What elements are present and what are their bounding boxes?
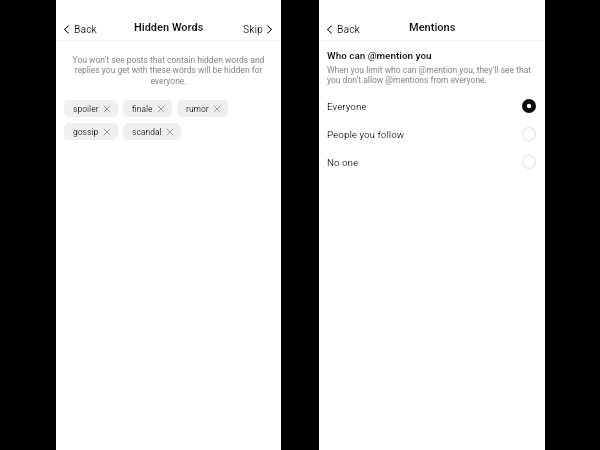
staticText: You won’t see posts that contain hidden … <box>72 55 265 86</box>
other: Remove spoiler <box>104 106 110 112</box>
button[interactable]: No one <box>327 148 536 176</box>
button[interactable]: Everyone <box>327 92 536 120</box>
staticText: Back <box>337 23 360 35</box>
other: Remove rumor <box>214 106 220 112</box>
staticText: When you limit who can @mention you, the… <box>327 65 536 85</box>
button[interactable]: gossip <box>64 123 118 140</box>
button[interactable]: rumor <box>177 100 228 117</box>
staticText: Everyone <box>327 101 367 112</box>
button[interactable]: Back <box>63 18 99 40</box>
staticText: Who can @mention you <box>327 50 432 62</box>
staticText: Back <box>74 23 97 35</box>
staticText: rumor <box>186 104 209 114</box>
staticText: Mentions <box>409 21 456 34</box>
staticText: Hidden Words <box>134 21 204 34</box>
staticText: spoiler <box>73 104 99 114</box>
staticText: People you follow <box>327 129 405 140</box>
button[interactable]: Back <box>326 18 362 40</box>
other: Remove finale <box>158 106 164 112</box>
button[interactable]: finale <box>123 100 172 117</box>
staticText: Skip <box>243 23 263 35</box>
staticText: No one <box>327 157 359 168</box>
other: Remove scandal <box>167 129 173 135</box>
staticText: finale <box>132 104 153 114</box>
button[interactable]: scandal <box>123 123 181 140</box>
button[interactable]: spoiler <box>64 100 118 117</box>
button[interactable]: Skip <box>241 18 274 40</box>
button[interactable]: People you follow <box>327 120 536 148</box>
staticText: gossip <box>73 127 99 137</box>
other: Remove gossip <box>104 129 110 135</box>
staticText: scandal <box>132 127 162 137</box>
